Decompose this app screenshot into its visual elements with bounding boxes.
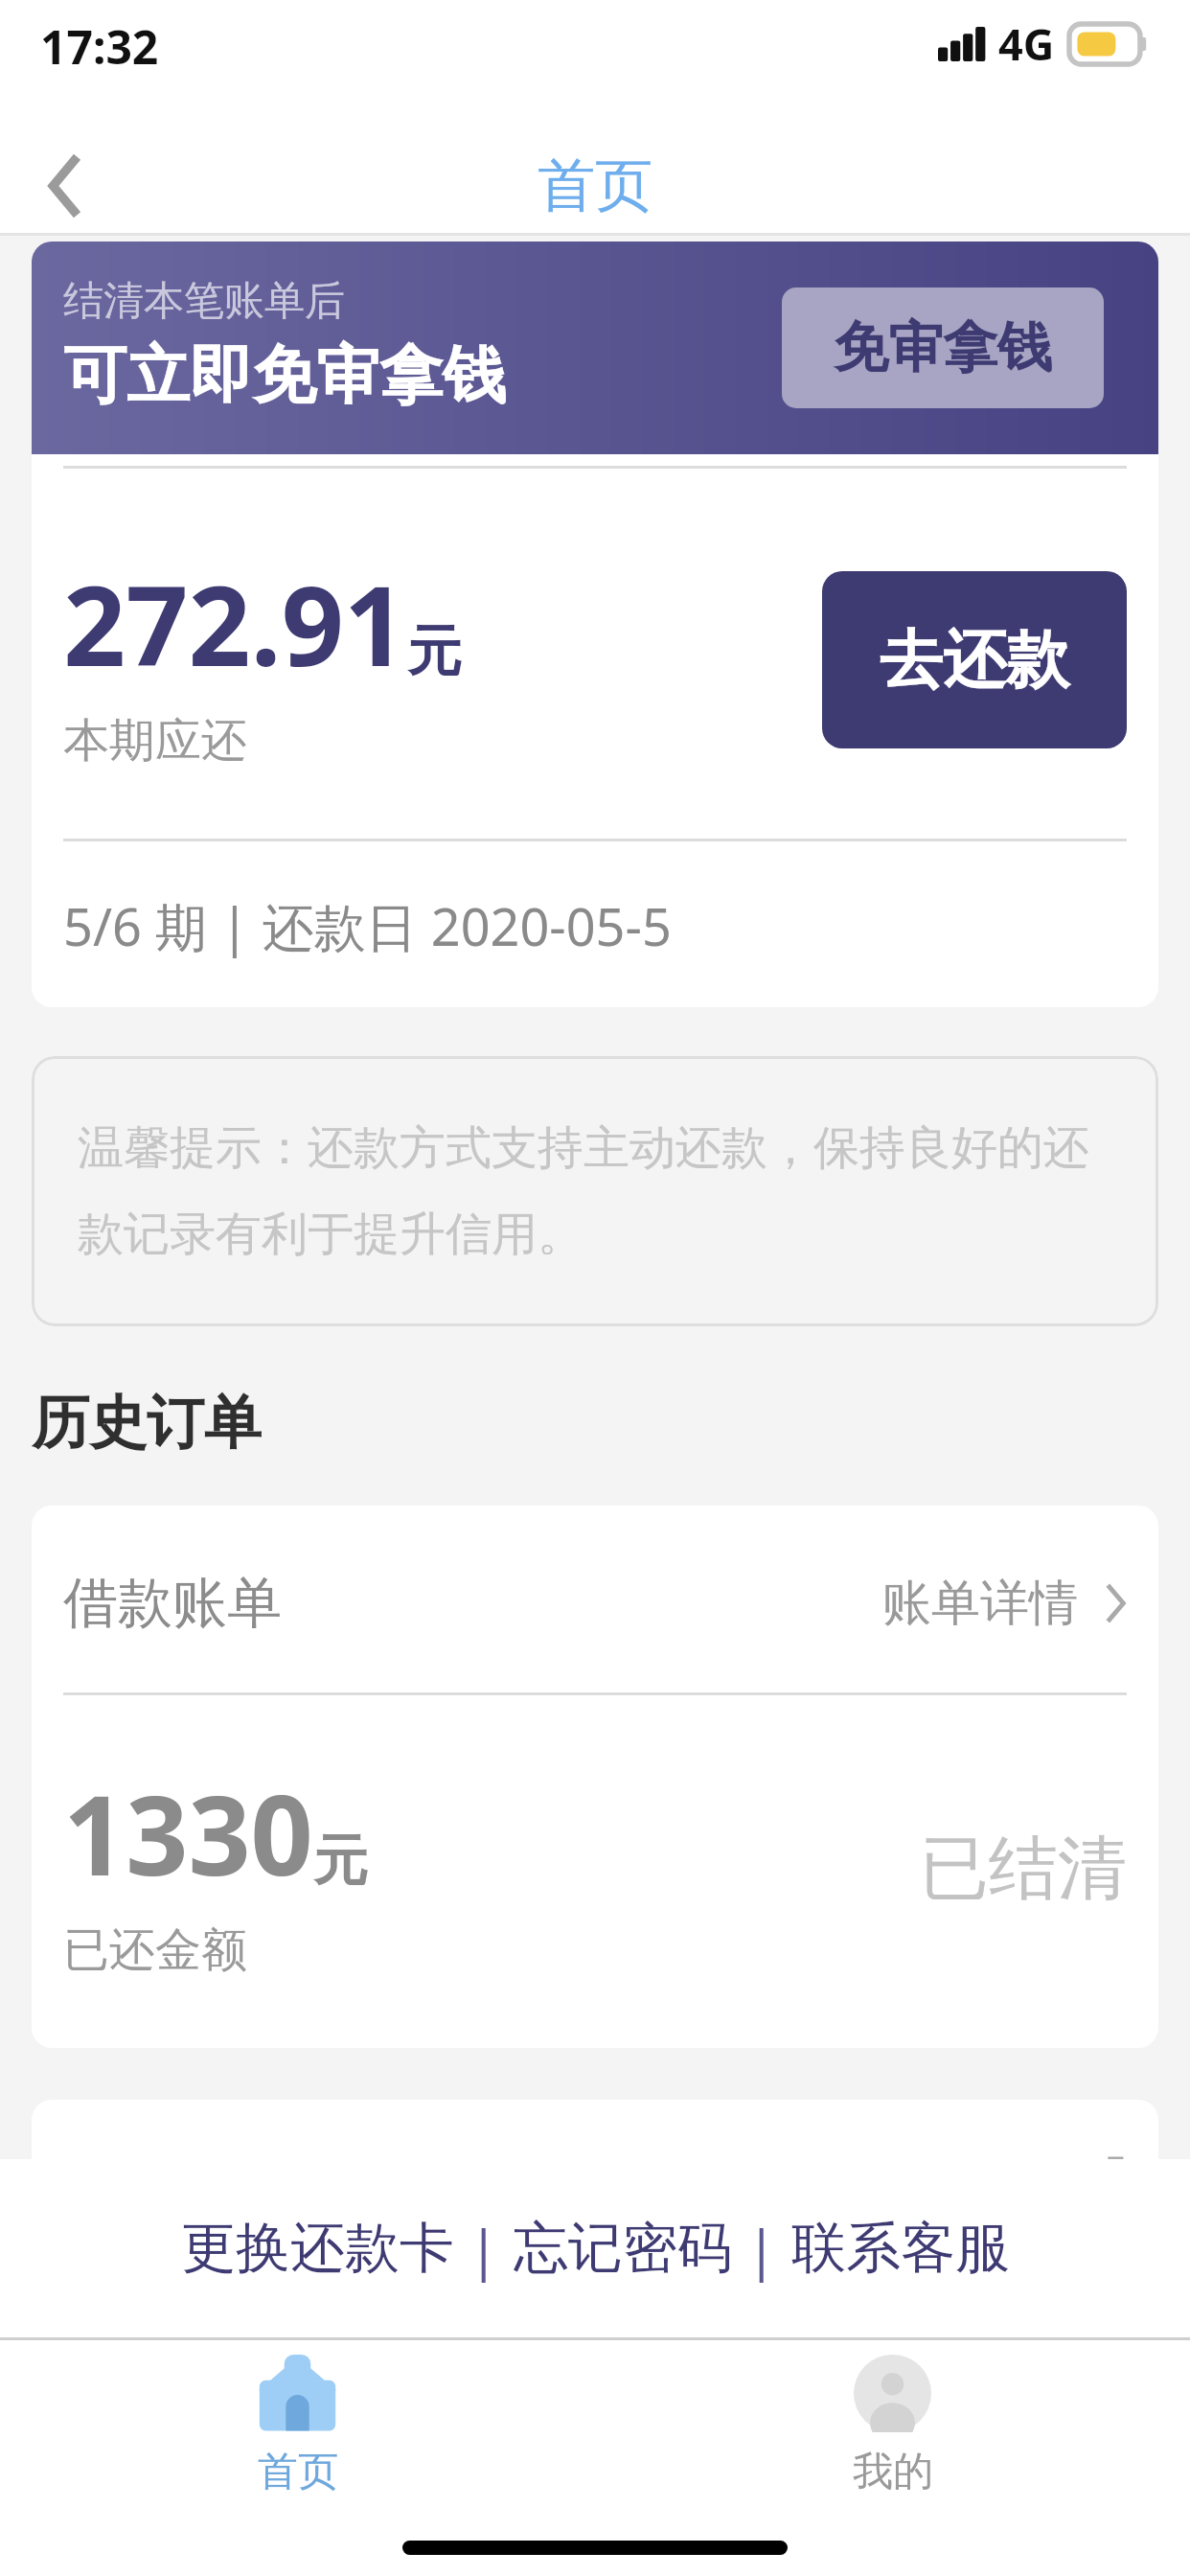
staticText: 1330 — [63, 1759, 313, 1907]
staticText: 历史订单 — [32, 1387, 262, 1460]
staticText: 温馨提示：还款方式支持主动还款，保持良好的还款记录有利于提升信用。 — [78, 1119, 1118, 1263]
staticText: 账单详情 — [882, 1573, 1078, 1634]
button[interactable]: 联系客服 — [777, 2191, 1024, 2306]
staticText: 可立即免审拿钱 — [63, 335, 506, 415]
button[interactable]: 更换还款卡 — [167, 2191, 469, 2306]
staticText: 已还金额 — [63, 1921, 247, 1979]
staticText: 272.91 — [63, 549, 407, 698]
staticText: 借款账单 — [63, 1569, 282, 1638]
button[interactable]: 忘记密码 — [499, 2191, 746, 2306]
staticText: 结清本笔账单后 — [63, 276, 345, 327]
staticText: 忘记密码 — [514, 2214, 732, 2283]
staticText: 5/6 期 | 还款日 2020-05-5 — [63, 890, 672, 961]
staticText: 首页 — [258, 2447, 338, 2497]
staticText: | — [469, 2211, 499, 2286]
staticText: 17:32 — [40, 15, 159, 78]
button[interactable]: 首页 — [0, 2340, 595, 2501]
staticText: 更换还款卡 — [181, 2214, 454, 2283]
staticText: | — [746, 2211, 777, 2286]
staticText: 免审拿钱 — [834, 313, 1052, 382]
button[interactable]: 去还款 — [822, 571, 1127, 748]
button[interactable]: 返回 — [0, 138, 132, 233]
staticText: 去还款 — [880, 620, 1069, 700]
staticText: 联系客服 — [791, 2214, 1010, 2283]
staticText: 首页 — [538, 149, 652, 222]
button[interactable]: 借款账单 — [32, 1506, 1158, 2048]
staticText: 元 — [313, 1827, 368, 1896]
staticText: 元 — [407, 617, 462, 686]
staticText: 我的 — [853, 2447, 933, 2497]
button[interactable]: 免审拿钱 — [782, 287, 1104, 408]
staticText: 已结清 — [920, 1826, 1127, 1913]
staticText: 4G — [998, 14, 1055, 73]
staticText: 本期应还 — [63, 712, 247, 770]
button[interactable]: 我的 — [595, 2340, 1190, 2501]
